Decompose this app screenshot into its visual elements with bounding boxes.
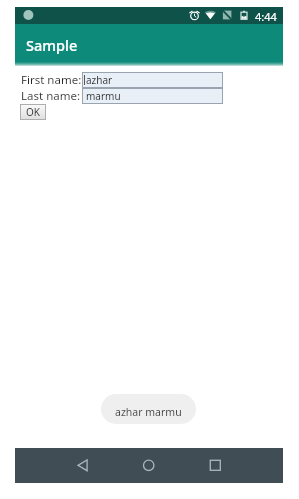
button[interactable]: OK	[20, 104, 46, 120]
staticText: Sample	[26, 35, 78, 55]
button[interactable]: Recent apps	[198, 448, 234, 483]
staticText: azhar	[86, 73, 113, 87]
staticText: First name:	[21, 72, 82, 88]
button[interactable]: Home	[131, 448, 167, 483]
staticText: OK	[26, 105, 40, 119]
staticText: marmu	[86, 89, 121, 103]
staticText: azhar marmu	[115, 405, 182, 419]
staticText: Last name:	[21, 88, 81, 104]
button[interactable]: Back	[65, 448, 101, 483]
staticText: 4:44	[255, 9, 277, 24]
